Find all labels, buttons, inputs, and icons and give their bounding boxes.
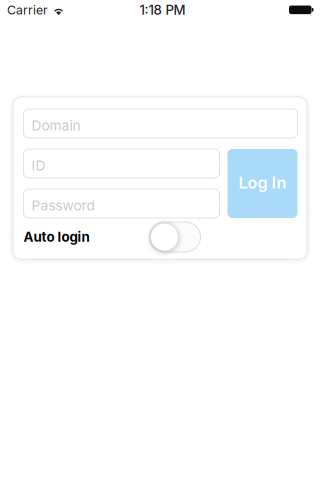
staticText: 1:18 PM — [139, 2, 185, 18]
staticText: Password — [31, 197, 94, 214]
staticText: Domain — [31, 117, 80, 134]
button[interactable]: Log In — [227, 149, 297, 218]
staticText: Auto login — [23, 229, 89, 245]
staticText: Carrier — [7, 3, 48, 17]
staticText: Log In — [238, 173, 286, 192]
button[interactable]: Auto login — [149, 222, 200, 252]
staticText: ID — [31, 157, 45, 174]
